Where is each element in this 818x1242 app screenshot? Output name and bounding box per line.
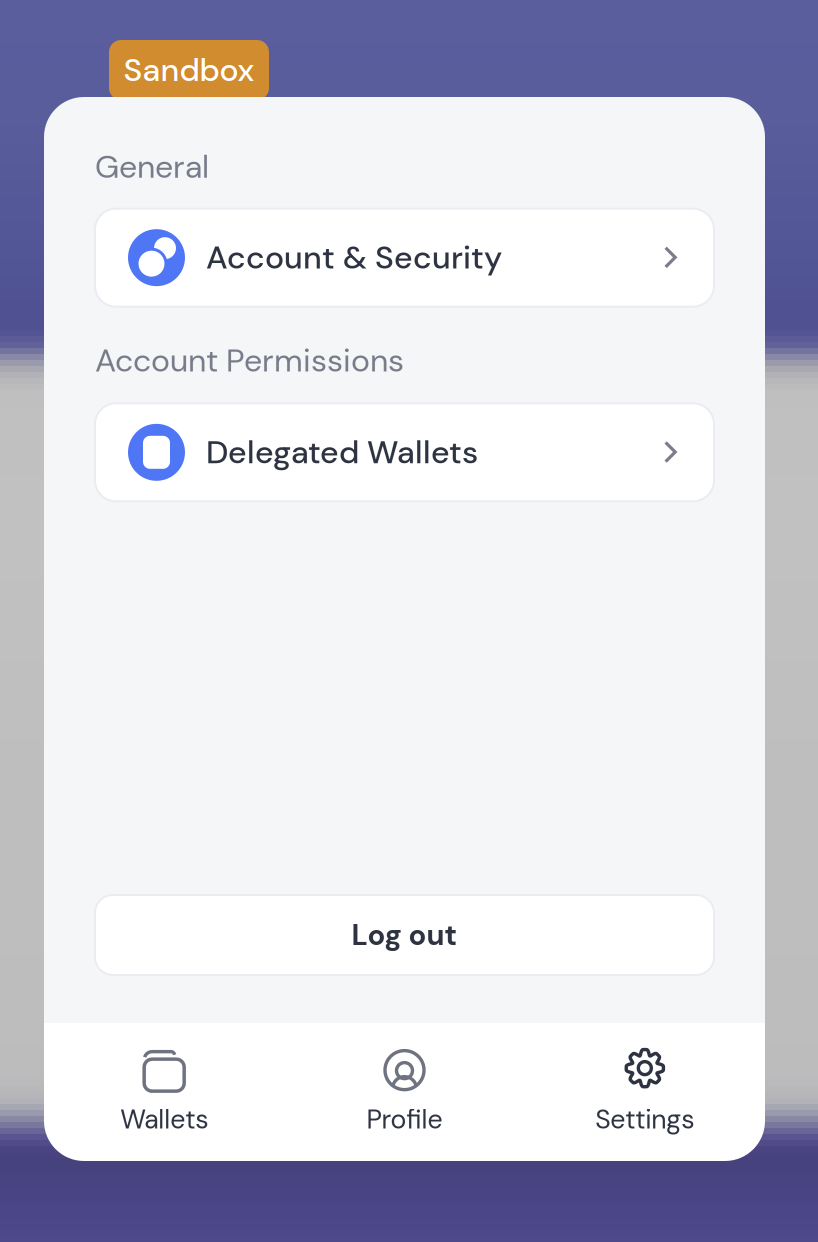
button[interactable]: Wallets (44, 1025, 284, 1159)
staticText: Log out (351, 916, 457, 954)
staticText: Profile (366, 1102, 442, 1137)
button[interactable]: Settings (525, 1025, 765, 1159)
staticText: General (95, 146, 209, 188)
staticText: Wallets (120, 1102, 208, 1137)
staticText: Delegated Wallets (206, 431, 478, 473)
staticText: Sandbox (123, 49, 254, 91)
staticText: Account Permissions (95, 340, 404, 381)
staticText: Settings (595, 1102, 694, 1137)
button[interactable]: Profile (284, 1025, 525, 1159)
button[interactable]: Delegated Wallets (95, 403, 714, 501)
button[interactable]: Log out (95, 895, 714, 975)
staticText: Account & Security (206, 237, 502, 278)
button[interactable]: Account & Security (95, 209, 714, 307)
